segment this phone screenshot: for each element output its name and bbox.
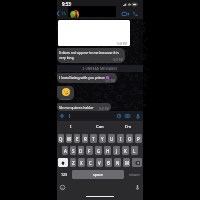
button[interactable]: V	[96, 158, 103, 167]
staticText: 123	[61, 172, 68, 177]
button[interactable]: I loved being with you prince	[57, 73, 117, 83]
staticText: X	[80, 160, 83, 166]
button[interactable]: A	[62, 146, 68, 155]
staticText: Y	[101, 136, 104, 142]
staticText: 15	[61, 11, 66, 17]
staticText: Z	[72, 160, 75, 166]
staticText: R	[84, 136, 87, 142]
button[interactable]: L	[131, 146, 138, 155]
staticText: H	[106, 148, 110, 154]
button[interactable]: Voice message	[133, 111, 142, 121]
staticText: A	[64, 148, 67, 154]
staticText: O	[128, 136, 132, 142]
button[interactable]: Can	[85, 121, 114, 132]
staticText: space	[93, 172, 103, 177]
staticText: No me quieres hablar	[59, 105, 94, 110]
staticText: C	[89, 160, 92, 166]
staticText: M	[125, 160, 129, 166]
button[interactable]: O	[126, 134, 133, 143]
button[interactable]: Z	[70, 158, 76, 167]
button[interactable]: Stickers	[114, 111, 123, 121]
staticText: B	[107, 160, 110, 166]
staticText: T	[92, 136, 95, 142]
staticText: I	[70, 124, 72, 130]
button[interactable]: Shift	[58, 158, 68, 167]
staticText: L	[133, 148, 136, 154]
button[interactable]: I	[117, 134, 124, 143]
button[interactable]: E	[74, 134, 80, 143]
button[interactable]: It does not appear to me because it is v…	[57, 48, 125, 63]
button[interactable]: Dictation	[134, 184, 141, 191]
staticText: F	[88, 148, 91, 154]
button[interactable]: G	[95, 146, 102, 155]
staticText: 9:53	[62, 1, 71, 7]
staticText: 9:40 PM	[117, 42, 127, 46]
staticText: V	[98, 160, 101, 166]
staticText: W	[67, 136, 72, 142]
button[interactable]: X	[78, 158, 85, 167]
button[interactable]: H	[104, 146, 111, 155]
button[interactable]: I	[57, 121, 85, 132]
button[interactable]: Y	[99, 134, 106, 143]
button[interactable]: Add attachment	[58, 111, 65, 121]
staticText: K	[124, 148, 127, 154]
staticText: 3 UNREAD MESSAGES	[57, 67, 143, 71]
staticText: N	[116, 160, 120, 166]
button[interactable]: P	[135, 134, 142, 143]
staticText: U	[110, 136, 114, 142]
staticText: G	[97, 148, 101, 154]
staticText: It does not appear to me because it is v…	[59, 50, 119, 60]
button[interactable]: C	[87, 158, 94, 167]
button[interactable]: Return	[126, 170, 142, 179]
button[interactable]: D	[78, 146, 84, 155]
button[interactable]: W	[66, 134, 72, 143]
button[interactable]: R	[82, 134, 88, 143]
staticText: Can	[96, 124, 104, 130]
button[interactable]: K	[122, 146, 129, 155]
button[interactable]: Photo	[58, 20, 130, 46]
button[interactable]: I'm	[114, 121, 143, 132]
button[interactable]: Q	[58, 134, 64, 143]
button[interactable]: Camera	[123, 111, 132, 121]
button[interactable]: 9:41 PM	[57, 86, 74, 100]
staticText: J	[116, 148, 118, 154]
staticText: I'm	[125, 124, 132, 130]
button[interactable]: Backspace	[132, 158, 142, 167]
staticText: P	[137, 136, 140, 142]
button[interactable]: Contact profile	[70, 10, 79, 19]
button[interactable]: U	[108, 134, 115, 143]
staticText: 9:41 PM	[113, 58, 123, 62]
button[interactable]: Call	[130, 8, 140, 19]
button[interactable]: Emoji	[59, 184, 66, 191]
staticText: D	[79, 148, 83, 154]
button[interactable]: Video call	[120, 8, 130, 19]
staticText: I loved being with you prince	[59, 75, 105, 80]
button[interactable]: N	[114, 158, 121, 167]
staticText: S	[72, 148, 75, 154]
staticText: return	[129, 172, 140, 177]
button[interactable]: B	[105, 158, 112, 167]
button[interactable]: Numbers	[58, 170, 70, 179]
staticText: 9:41 PM	[61, 97, 70, 100]
button[interactable]: M	[123, 158, 130, 167]
button[interactable]: Back	[57, 8, 66, 19]
staticText: I	[120, 136, 122, 142]
button[interactable]: J	[113, 146, 120, 155]
button[interactable]: space	[72, 170, 124, 179]
button[interactable]: No me quieres hablar	[57, 103, 111, 111]
staticText: Q	[59, 136, 63, 142]
staticText: 9:41 PM	[105, 79, 115, 83]
button[interactable]: T	[90, 134, 97, 143]
staticText: E	[76, 136, 79, 142]
button[interactable]: S	[70, 146, 76, 155]
button[interactable]: F	[86, 146, 93, 155]
button[interactable]	[65, 113, 115, 119]
staticText: 9:41 PM	[99, 107, 109, 111]
